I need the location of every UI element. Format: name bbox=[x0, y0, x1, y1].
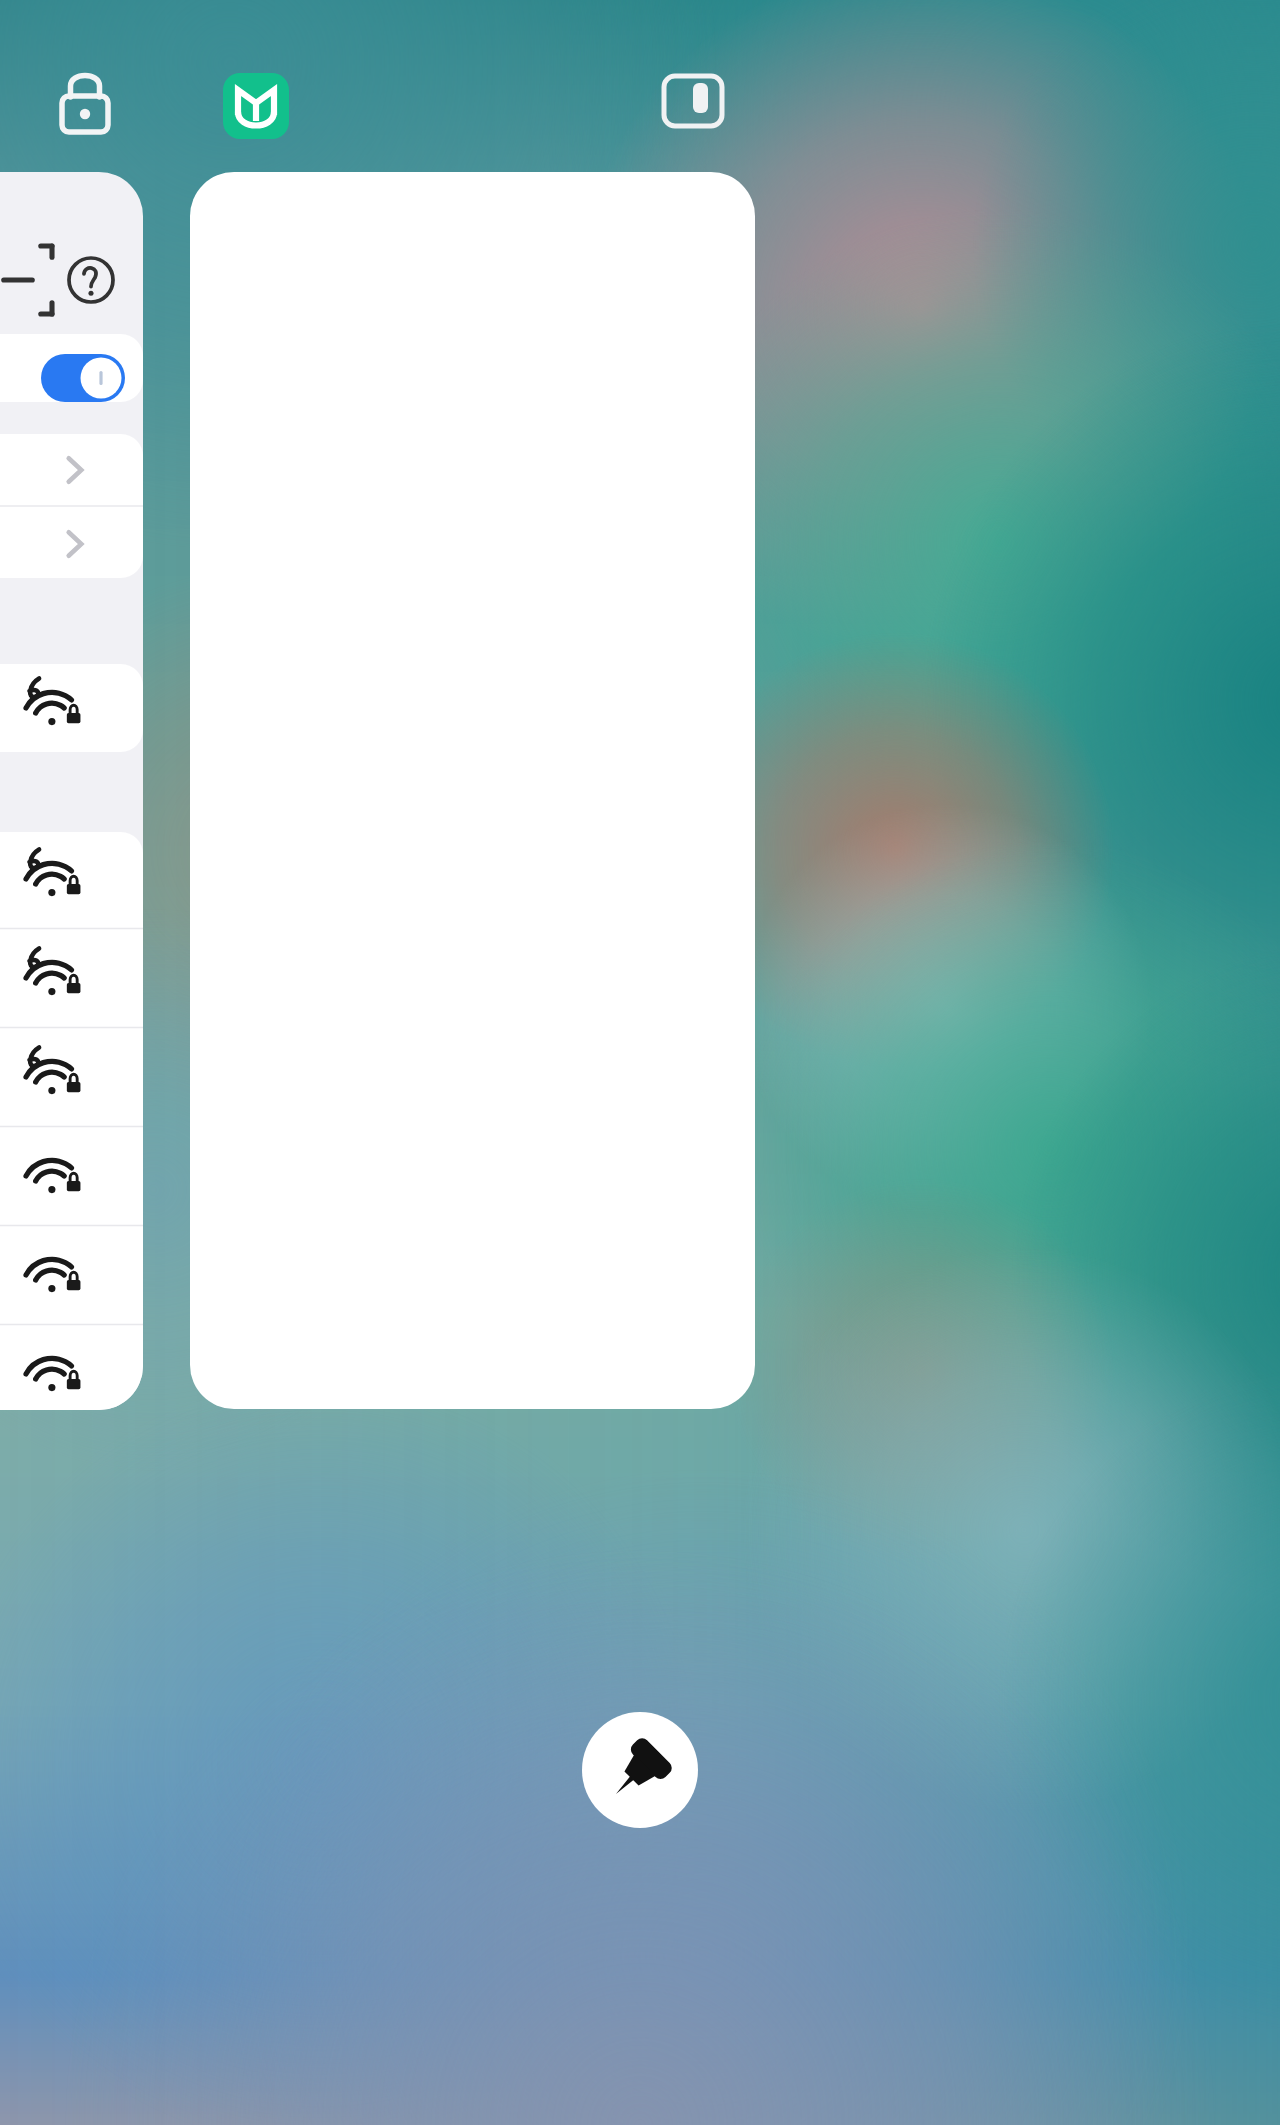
button[interactable]: Pin app bbox=[582, 1712, 698, 1828]
button[interactable] bbox=[190, 172, 755, 1409]
button[interactable] bbox=[222, 68, 432, 144]
button[interactable] bbox=[0, 172, 143, 1410]
button[interactable]: Lock task bbox=[46, 62, 124, 140]
button[interactable]: Split screen bbox=[656, 64, 730, 138]
